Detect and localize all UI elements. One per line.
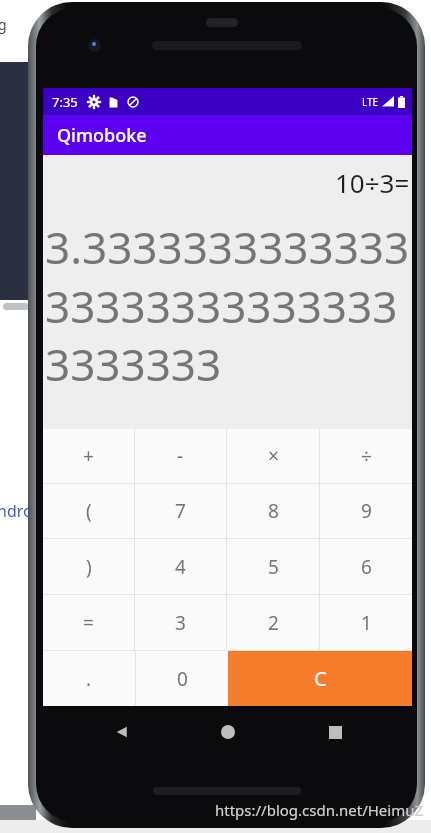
staticText: 1 xyxy=(361,610,372,636)
staticText: 0 xyxy=(177,666,188,692)
staticText: https://blog.csdn.net/HeimuZ xyxy=(215,800,424,820)
staticText: . xyxy=(86,666,92,692)
button[interactable]: 1 xyxy=(320,595,412,650)
staticText: 4 xyxy=(175,554,186,580)
staticText: g xyxy=(0,15,7,34)
staticText: ndro xyxy=(0,500,33,522)
button[interactable]: 9 xyxy=(320,484,412,538)
staticText: 2 xyxy=(268,610,279,636)
button[interactable]: 3 xyxy=(135,595,226,650)
staticText: 5 xyxy=(268,554,279,580)
button[interactable]: = xyxy=(43,595,134,650)
button[interactable]: 7 xyxy=(135,484,226,538)
staticText: 6 xyxy=(361,554,372,580)
button[interactable]: 6 xyxy=(320,539,412,594)
button[interactable]: Back xyxy=(111,721,133,743)
staticText: LTE xyxy=(362,95,379,109)
staticText: 7:35 xyxy=(52,93,78,111)
button[interactable]: + xyxy=(43,429,134,483)
button[interactable]: Home xyxy=(221,725,235,739)
button[interactable]: ÷ xyxy=(320,429,412,483)
button[interactable]: 5 xyxy=(227,539,319,594)
button[interactable]: 2 xyxy=(227,595,319,650)
staticText: = xyxy=(83,610,94,636)
button[interactable]: . xyxy=(43,651,135,706)
button[interactable]: ) xyxy=(43,539,134,594)
staticText: 9 xyxy=(361,498,372,524)
staticText: 3 xyxy=(175,610,186,636)
staticText: - xyxy=(177,443,184,469)
staticText: × xyxy=(268,443,279,469)
staticText: Qimoboke xyxy=(57,123,147,148)
staticText: + xyxy=(83,443,94,469)
button[interactable]: ( xyxy=(43,484,134,538)
button[interactable]: 8 xyxy=(227,484,319,538)
staticText: 8 xyxy=(268,498,279,524)
staticText: 3.3333333333333333333333333333333333 xyxy=(45,217,411,393)
staticText: C xyxy=(314,665,327,692)
staticText: 10÷3= xyxy=(335,165,410,200)
staticText: ) xyxy=(86,554,92,580)
staticText: ÷ xyxy=(361,443,372,469)
button[interactable]: × xyxy=(227,429,319,483)
button[interactable]: C xyxy=(228,651,412,706)
staticText: 7 xyxy=(175,498,186,524)
staticText: ( xyxy=(86,498,92,524)
button[interactable]: - xyxy=(135,429,226,483)
button[interactable]: 0 xyxy=(136,651,228,706)
button[interactable]: 4 xyxy=(135,539,226,594)
